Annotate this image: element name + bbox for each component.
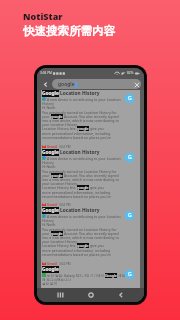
staticText: History bbox=[42, 101, 54, 106]
staticText: 3:04 PM bbox=[59, 262, 71, 266]
staticText: Account. You also recently signed bbox=[63, 173, 119, 178]
staticText: Location History lets bbox=[42, 243, 77, 248]
button[interactable]: Gmail bbox=[41, 90, 140, 143]
staticText: You previously turned on Location Histor… bbox=[42, 227, 117, 232]
staticText: NotiStar bbox=[23, 10, 63, 22]
staticText: Google bbox=[42, 207, 59, 214]
button[interactable]: Recent apps bbox=[53, 288, 67, 302]
staticText: Location History bbox=[60, 149, 100, 156]
staticText: google bbox=[77, 185, 89, 190]
staticText: more personalized information, including bbox=[42, 248, 111, 253]
staticText: Location History bbox=[60, 90, 100, 97]
staticText: Location History lets bbox=[42, 185, 77, 190]
staticText: into a new device, which is now contribu… bbox=[42, 235, 119, 240]
staticText: You previously turned on Location Histor… bbox=[42, 110, 117, 115]
staticText: give you bbox=[89, 126, 104, 131]
button[interactable]: Gmail bbox=[41, 260, 140, 288]
staticText: 3:04 PM bbox=[59, 145, 71, 149]
staticText: google bbox=[51, 173, 63, 178]
staticText: Gmail bbox=[47, 202, 57, 207]
staticText: google bbox=[51, 114, 63, 119]
staticText: Account. You also recently signed bbox=[63, 114, 119, 119]
button[interactable]: Back bbox=[39, 78, 52, 90]
staticText: your Location History. bbox=[42, 122, 78, 127]
staticText: Hi Notih bbox=[42, 105, 56, 110]
staticText: google bbox=[58, 81, 75, 88]
staticText: your bbox=[42, 173, 51, 178]
staticText: google bbox=[77, 126, 89, 131]
button[interactable]: Back bbox=[114, 288, 128, 302]
staticText: 설정 문의 bbox=[42, 281, 57, 286]
staticText: Hi Notih bbox=[42, 164, 56, 169]
staticText: 快速搜索所需内容 bbox=[23, 24, 115, 38]
staticText: recommendations based on places you've bbox=[42, 252, 111, 257]
button[interactable]: Home bbox=[84, 288, 98, 302]
staticText: give you bbox=[89, 243, 104, 248]
staticText: 보안 알림: Galaxy S21+ 5G 기기에서 bbox=[47, 273, 105, 278]
staticText: Google bbox=[105, 273, 117, 278]
staticText: History bbox=[42, 218, 54, 223]
staticText: G bbox=[128, 212, 132, 219]
staticText: give you bbox=[89, 185, 104, 190]
staticText: google bbox=[51, 231, 63, 236]
staticText: into a new device, which is now contribu… bbox=[42, 177, 119, 182]
button[interactable]: google bbox=[52, 79, 141, 89]
button[interactable]: Clear search bbox=[132, 80, 141, 89]
staticText: your bbox=[42, 231, 51, 236]
staticText: Account. You also recently signed bbox=[63, 231, 119, 236]
staticText: more personalized information, including bbox=[42, 190, 111, 195]
staticText: Google bbox=[42, 90, 59, 97]
staticText: A new device is contributing to your Loc… bbox=[47, 156, 121, 161]
staticText: A new device is contributing to your Loc… bbox=[47, 214, 121, 219]
staticText: your Location History. bbox=[42, 239, 78, 244]
staticText: Location History bbox=[60, 207, 100, 214]
staticText: 에 로그인했습니다 bbox=[42, 277, 71, 282]
staticText: 3:04 PM bbox=[40, 71, 52, 75]
staticText: G bbox=[128, 154, 132, 161]
staticText: Location History lets bbox=[42, 126, 77, 131]
staticText: 계정 bbox=[117, 273, 125, 278]
staticText: your bbox=[42, 114, 51, 119]
staticText: G bbox=[128, 271, 132, 278]
staticText: google bbox=[77, 243, 89, 248]
staticText: Google bbox=[42, 149, 59, 156]
button[interactable]: Gmail bbox=[41, 143, 140, 202]
staticText: 3:04 PM bbox=[59, 203, 71, 207]
staticText: Gmail bbox=[47, 261, 57, 266]
staticText: recommendations based on places you've bbox=[42, 135, 111, 140]
staticText: into a new device, which is now contribu… bbox=[42, 118, 119, 123]
staticText: History bbox=[42, 160, 54, 165]
staticText: A new device is contributing to your Loc… bbox=[47, 97, 121, 102]
staticText: Google bbox=[42, 266, 59, 273]
staticText: your Location History. bbox=[42, 181, 78, 186]
staticText: 82% bbox=[127, 71, 134, 75]
staticText: Hi Notih bbox=[42, 222, 56, 227]
staticText: Gmail bbox=[47, 144, 57, 149]
staticText: G bbox=[128, 95, 132, 102]
staticText: recommendations based on places you've bbox=[42, 194, 111, 199]
button[interactable]: Gmail bbox=[41, 201, 140, 260]
staticText: more personalized information, including bbox=[42, 131, 111, 136]
staticText: You previously turned on Location Histor… bbox=[42, 169, 117, 174]
